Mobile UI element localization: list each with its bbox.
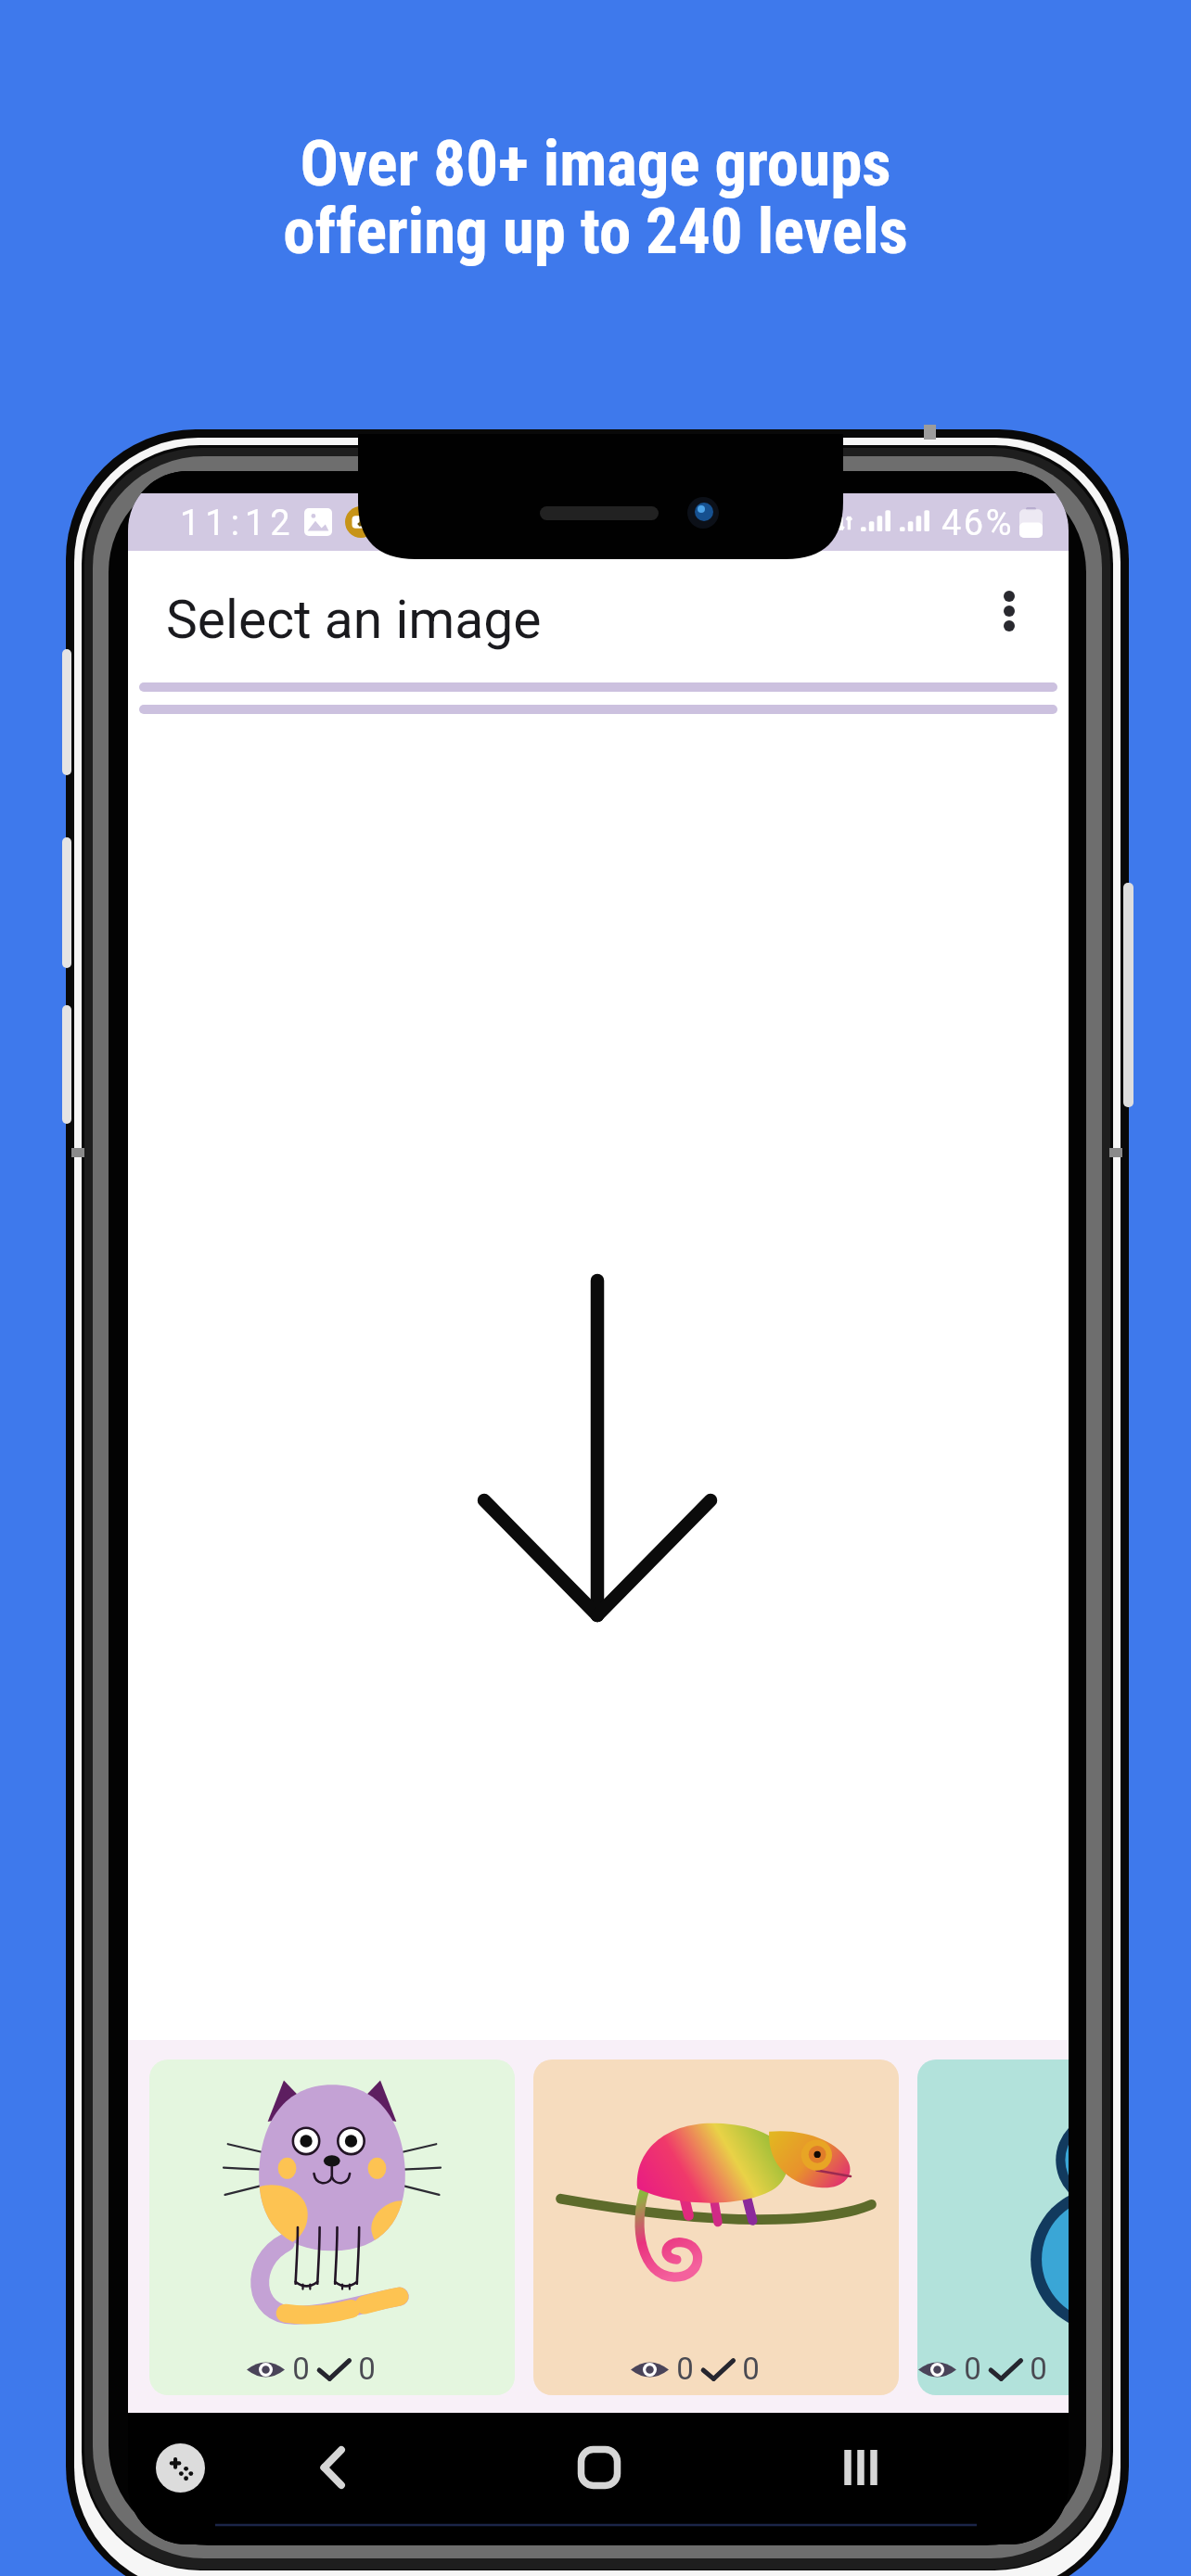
staticText: 0 xyxy=(669,2351,701,2387)
staticText: 0 xyxy=(351,2351,376,2387)
button[interactable]: Cat image group xyxy=(149,2060,515,2395)
staticText: 11:12 xyxy=(180,503,296,544)
staticText: 46% xyxy=(941,503,1015,544)
button[interactable]: Chameleon image group xyxy=(533,2060,899,2395)
button[interactable]: Back xyxy=(288,2423,378,2512)
staticText: 0 xyxy=(1022,2351,1047,2387)
staticText: Over 80+ image groups offering up to 240… xyxy=(0,126,1191,269)
button[interactable]: Recent apps xyxy=(816,2423,905,2512)
button[interactable]: More options xyxy=(970,572,1048,650)
staticText: 0 xyxy=(956,2351,989,2387)
staticText: 0 xyxy=(735,2351,760,2387)
button[interactable]: Home xyxy=(555,2423,644,2512)
staticText: 0 xyxy=(285,2351,317,2387)
button[interactable]: Game booster xyxy=(156,2443,205,2493)
button[interactable]: Snowman image group xyxy=(917,2060,1069,2395)
staticText: Select an image xyxy=(166,589,542,651)
